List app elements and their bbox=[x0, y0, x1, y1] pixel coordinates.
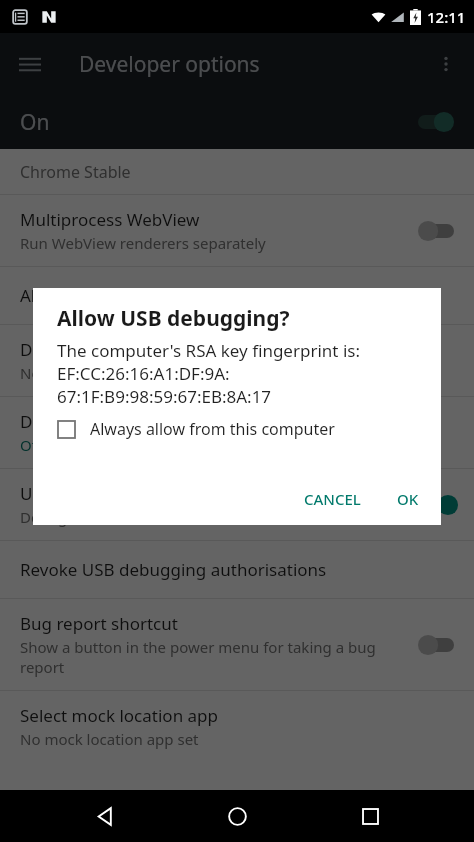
button[interactable]: More options bbox=[422, 40, 470, 88]
staticText: On bbox=[20, 108, 50, 137]
staticText: Debug mode when USB is connected bbox=[20, 507, 280, 527]
staticText: Developer options bbox=[79, 50, 260, 79]
button[interactable]: OK bbox=[383, 479, 433, 519]
button[interactable]: Revoke USB debugging authorisations bbox=[0, 541, 474, 598]
button[interactable]: Bug report shortcut bbox=[0, 599, 474, 690]
staticText: Run WebView renderers separately bbox=[20, 233, 266, 253]
button[interactable]: Back bbox=[77, 790, 133, 842]
staticText: CANCEL bbox=[304, 489, 361, 509]
button[interactable]: Navigation menu bbox=[6, 40, 54, 88]
staticText: Bug report shortcut bbox=[20, 612, 178, 635]
staticText: Show a button in the power menu for taki… bbox=[20, 637, 402, 677]
button[interactable]: Debug app bbox=[0, 325, 474, 396]
staticText: No debug application set bbox=[20, 363, 197, 383]
staticText: Debug GPU overlay bbox=[20, 410, 176, 433]
button[interactable]: Recent apps bbox=[342, 790, 398, 842]
button[interactable]: On bbox=[0, 95, 474, 149]
staticText: Off bbox=[20, 435, 43, 455]
staticText: Always allow from this computer bbox=[90, 418, 335, 440]
button[interactable]: Always allow from this computer bbox=[33, 416, 441, 442]
button[interactable]: Allow mock locations bbox=[0, 267, 474, 324]
staticText: 12:11 bbox=[427, 7, 466, 27]
button[interactable]: Select mock location app bbox=[0, 691, 474, 762]
button[interactable]: Multiprocess WebView bbox=[0, 195, 474, 266]
button[interactable]: CANCEL bbox=[290, 479, 375, 519]
staticText: No mock location app set bbox=[20, 729, 199, 749]
staticText: The computer's RSA key fingerprint is: E… bbox=[57, 339, 360, 408]
button[interactable]: Debug GPU overlay bbox=[0, 397, 474, 468]
staticText: Multiprocess WebView bbox=[20, 208, 200, 231]
button[interactable]: Home bbox=[209, 790, 265, 842]
button[interactable]: USB debugging bbox=[0, 469, 474, 540]
staticText: Chrome Stable bbox=[20, 161, 131, 183]
staticText: USB debugging bbox=[20, 482, 145, 505]
staticText: OK bbox=[397, 489, 419, 509]
staticText: Revoke USB debugging authorisations bbox=[20, 558, 327, 581]
staticText: Allow mock locations bbox=[20, 284, 188, 307]
staticText: Debug app bbox=[20, 338, 109, 361]
staticText: Select mock location app bbox=[20, 704, 218, 727]
staticText: Allow USB debugging? bbox=[57, 304, 290, 333]
